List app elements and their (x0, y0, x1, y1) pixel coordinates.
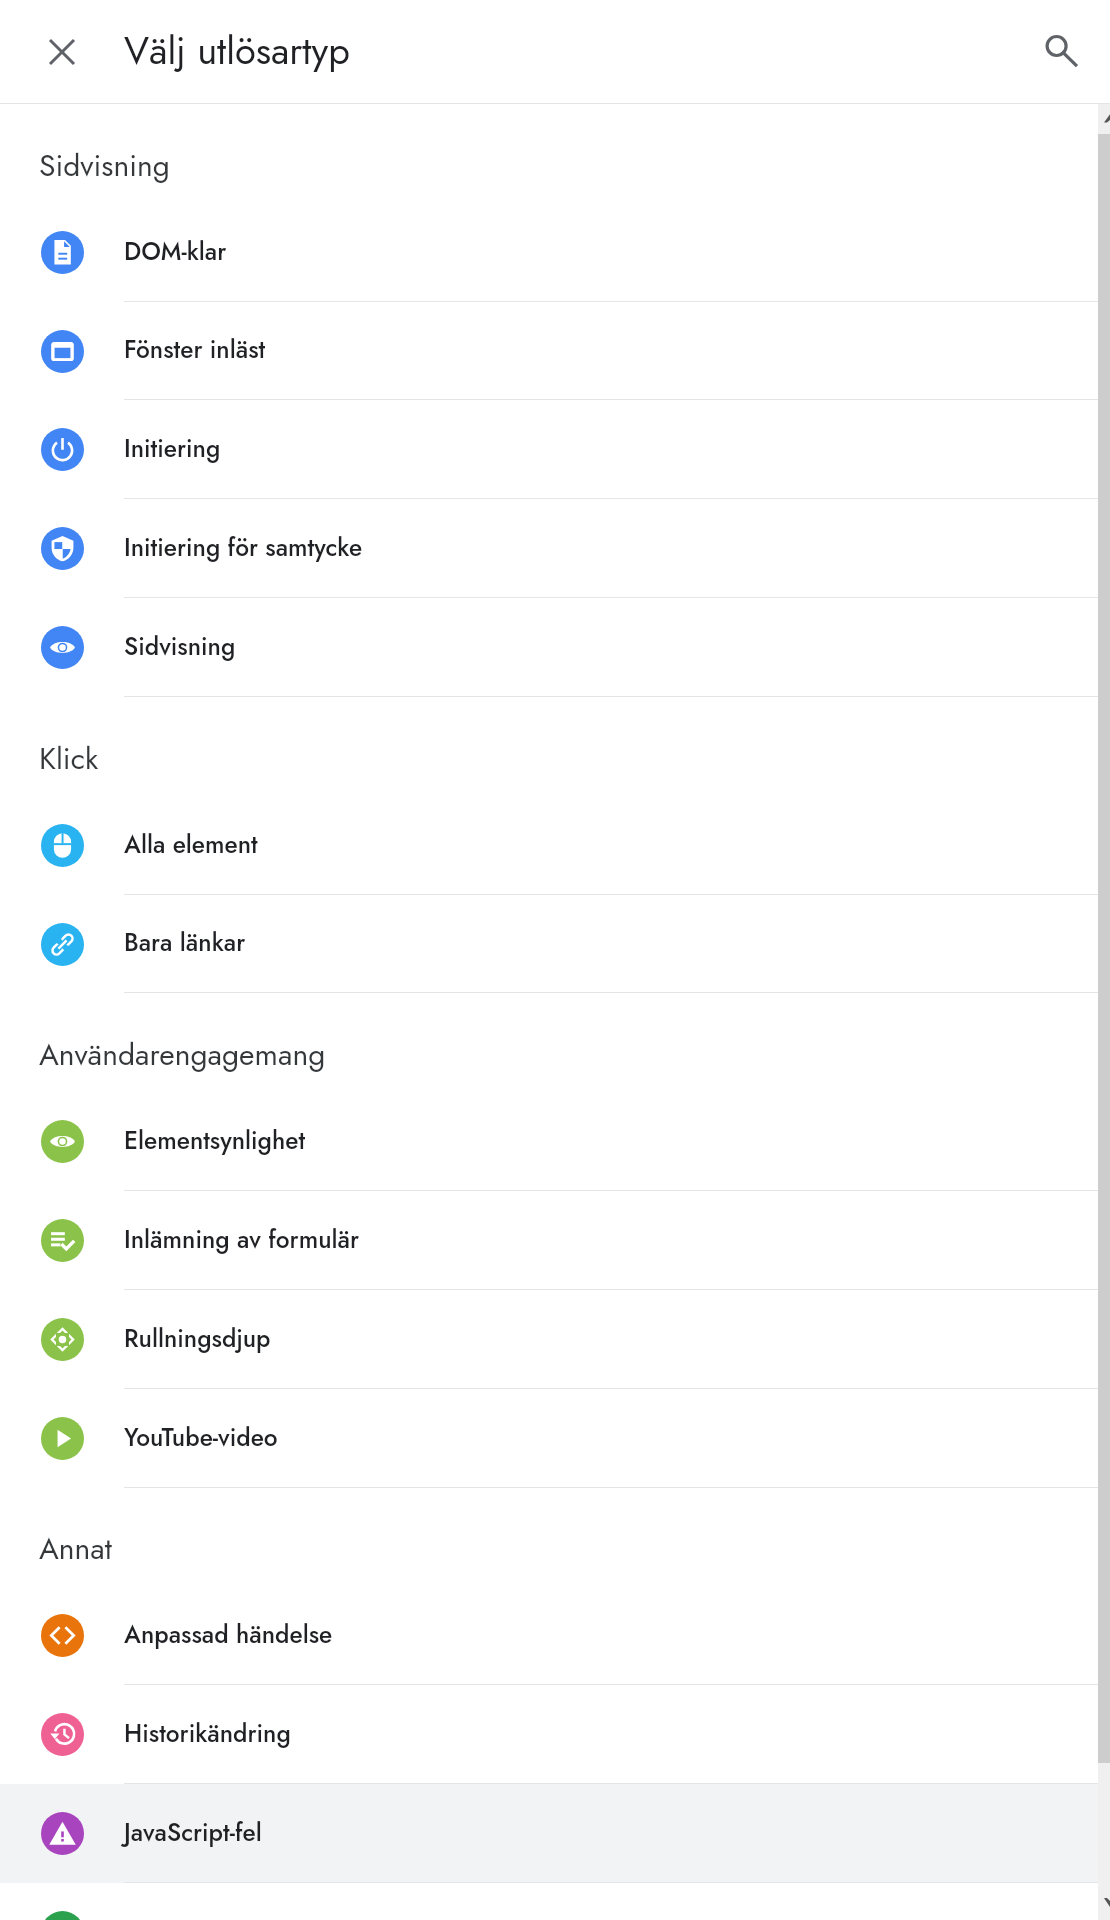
button[interactable]: Elementsynlighet (0, 1092, 1110, 1191)
staticText: Historikändring (124, 1716, 291, 1751)
staticText: Initiering för samtycke (124, 530, 363, 565)
button[interactable]: Bara länkar (0, 895, 1110, 993)
staticText: YouTube-video (124, 1420, 278, 1455)
staticText: Anpassad händelse (124, 1617, 333, 1652)
staticText: Inlämning av formulär (124, 1222, 360, 1257)
staticText: Klick (39, 737, 99, 780)
staticText: Sidvisning (124, 629, 236, 664)
button[interactable]: Search (1008, 0, 1110, 104)
button[interactable]: Close (0, 0, 124, 104)
button[interactable]: JavaScript-fel (0, 1784, 1110, 1883)
staticText: Rullningsdjup (124, 1321, 271, 1356)
button[interactable]: Sidvisning (0, 598, 1110, 697)
button[interactable]: Fönster inläst (0, 302, 1110, 400)
button[interactable]: Historikändring (0, 1685, 1110, 1784)
button[interactable]: Rullningsdjup (0, 1290, 1110, 1389)
button[interactable]: Alla element (0, 796, 1110, 895)
staticText: Välj utlösartyp (124, 23, 350, 78)
button[interactable]: YouTube-video (0, 1389, 1110, 1488)
staticText: JavaScript-fel (124, 1815, 262, 1850)
staticText: DOM-klar (124, 234, 227, 269)
staticText: Initiering (124, 431, 221, 466)
staticText: Alla element (124, 827, 258, 862)
button[interactable]: Initiering (0, 400, 1110, 499)
staticText: Annat (39, 1527, 112, 1570)
staticText: Bara länkar (124, 925, 246, 960)
button[interactable]: DOM-klar (0, 203, 1110, 302)
staticText: Fönster inläst (124, 332, 266, 367)
staticText: Elementsynlighet (124, 1123, 306, 1158)
button[interactable]: Initiering för samtycke (0, 499, 1110, 598)
button[interactable]: Timer (0, 1883, 1110, 1920)
staticText: Sidvisning (39, 144, 170, 187)
button[interactable]: Anpassad händelse (0, 1586, 1110, 1685)
button[interactable]: Inlämning av formulär (0, 1191, 1110, 1290)
staticText: Användarengagemang (39, 1033, 326, 1076)
